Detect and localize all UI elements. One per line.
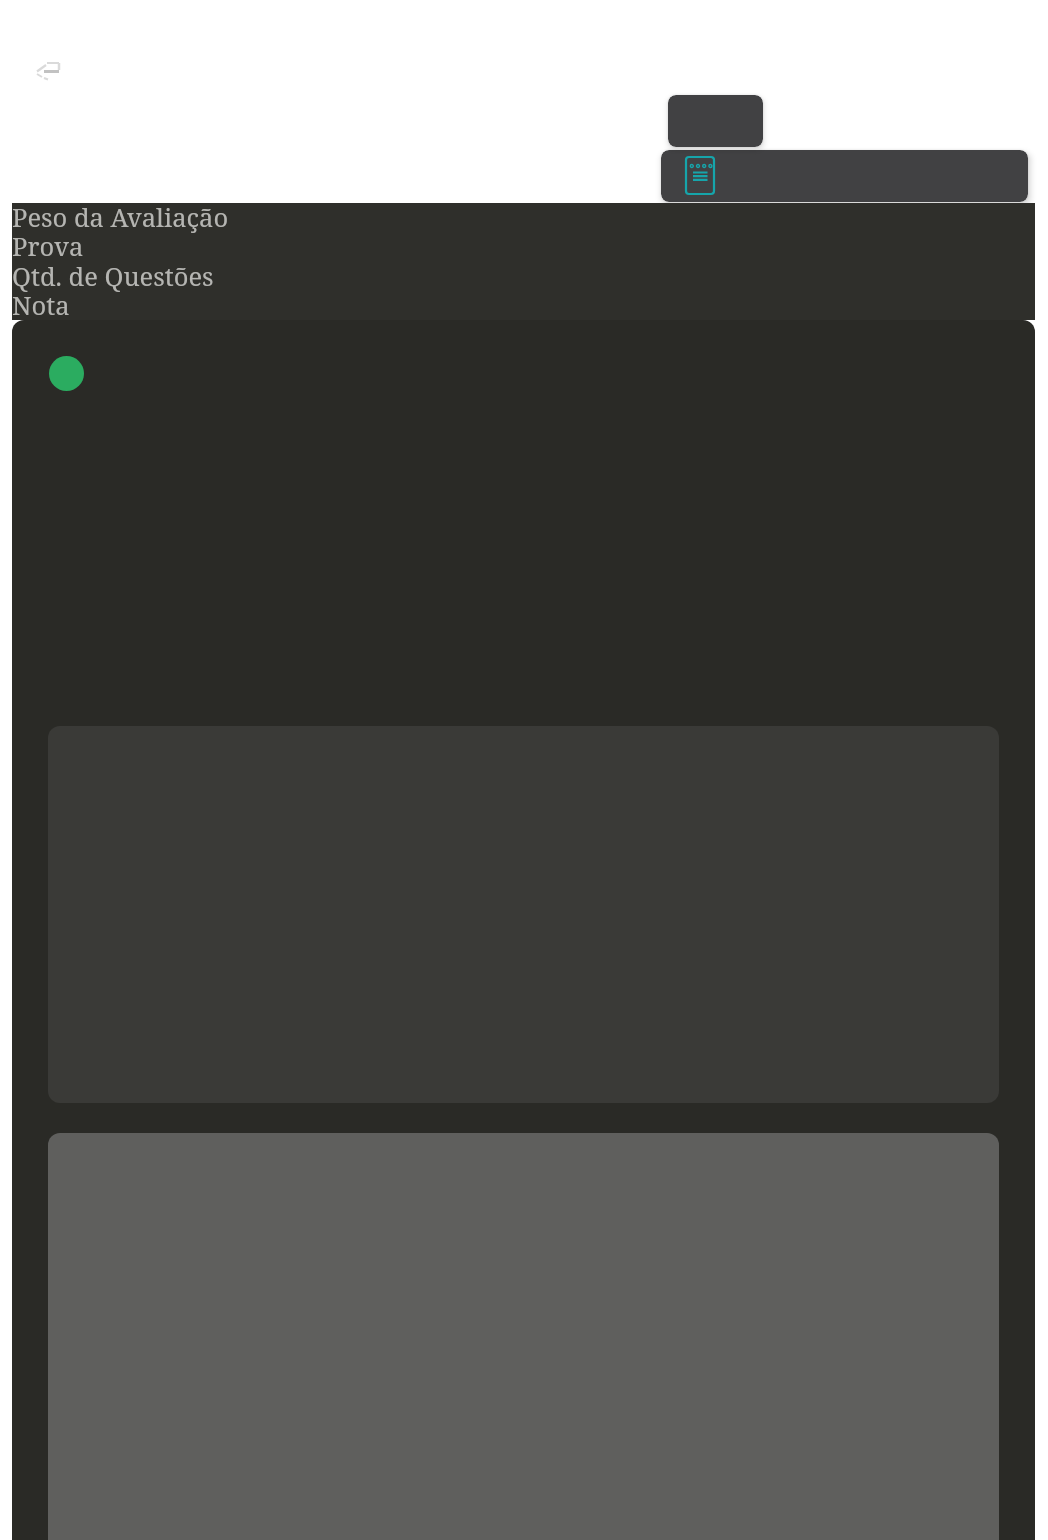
staticText: Peso da Avaliação <box>12 200 229 235</box>
staticText: Prova <box>12 229 84 264</box>
button[interactable] <box>668 95 763 147</box>
button[interactable] <box>661 150 1028 202</box>
staticText: Nota <box>12 288 70 323</box>
staticText: Qtd. de Questões <box>12 259 214 294</box>
button[interactable] <box>32 54 66 88</box>
button[interactable] <box>49 356 84 391</box>
